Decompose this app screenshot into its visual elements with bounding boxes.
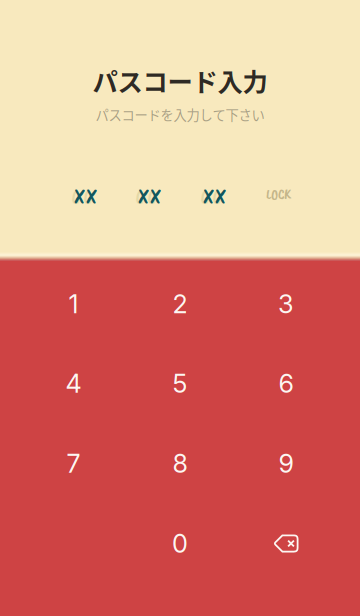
staticText: 2 bbox=[172, 289, 187, 319]
button[interactable]: 9 bbox=[240, 428, 332, 498]
staticText: 5 bbox=[172, 368, 187, 399]
button[interactable]: 8 bbox=[134, 428, 226, 498]
button[interactable]: 4 bbox=[27, 348, 119, 418]
staticText: X bbox=[215, 183, 226, 210]
staticText: O bbox=[71, 185, 80, 208]
staticText: 0 bbox=[172, 528, 188, 559]
staticText: 4 bbox=[65, 368, 81, 399]
button[interactable]: 5 bbox=[134, 348, 226, 418]
staticText: O bbox=[83, 185, 92, 208]
staticText: X bbox=[150, 183, 161, 210]
staticText: X bbox=[138, 183, 149, 210]
button[interactable]: 1 bbox=[27, 269, 119, 339]
button[interactable]: 2 bbox=[134, 269, 226, 339]
button[interactable]: 0 bbox=[134, 508, 226, 578]
staticText: X bbox=[203, 183, 214, 210]
staticText: パスコード入力 bbox=[92, 62, 267, 99]
staticText: 8 bbox=[172, 448, 187, 479]
staticText: LOCK bbox=[266, 185, 291, 203]
staticText: O bbox=[147, 185, 156, 208]
staticText: X bbox=[86, 183, 97, 210]
button[interactable]: 3 bbox=[240, 269, 332, 339]
staticText: O bbox=[212, 185, 221, 208]
staticText: X bbox=[74, 183, 85, 210]
staticText: O bbox=[200, 185, 209, 208]
staticText: 7 bbox=[66, 448, 80, 479]
staticText: 9 bbox=[278, 448, 293, 479]
staticText: パスコードを入力して下さい bbox=[95, 105, 264, 124]
staticText: 1 bbox=[68, 289, 78, 319]
staticText: 6 bbox=[278, 368, 293, 399]
button[interactable]: 6 bbox=[240, 348, 332, 418]
staticText: 3 bbox=[278, 289, 294, 319]
button[interactable]: 7 bbox=[27, 428, 119, 498]
button[interactable]: Delete bbox=[240, 508, 332, 578]
staticText: O bbox=[135, 185, 144, 208]
